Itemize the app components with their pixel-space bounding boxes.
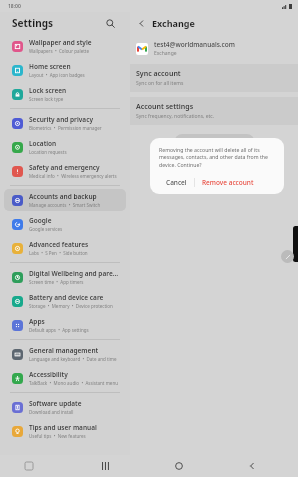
staticText: Sync account <box>136 69 181 79</box>
staticText: Digital Wellbeing and parental controls <box>29 269 120 278</box>
staticText: Advanced features <box>29 240 89 249</box>
staticText: Security and privacy <box>29 115 93 124</box>
staticText: test4@worldmanuals.com <box>154 40 235 49</box>
button[interactable]: Recents <box>97 457 115 475</box>
staticText: Accessibility <box>29 370 68 379</box>
staticText: Medical info • Wireless emergency alerts <box>29 173 117 179</box>
staticText: Remove account <box>202 178 254 187</box>
button[interactable]: Home <box>170 457 188 475</box>
staticText: Sync on for all items <box>136 80 184 87</box>
button[interactable]: Accounts and backup <box>4 189 126 211</box>
button[interactable]: General management <box>4 343 126 365</box>
button[interactable]: Apps <box>4 314 126 336</box>
staticText: Default apps • App settings <box>29 327 89 333</box>
button[interactable]: Location <box>4 136 126 158</box>
staticText: Location requests <box>29 149 67 155</box>
button[interactable]: Lock screen <box>4 83 126 105</box>
button[interactable]: Advanced features <box>4 237 126 259</box>
button[interactable]: Sync account <box>130 64 298 92</box>
staticText: Google services <box>29 226 63 232</box>
staticText: Wallpapers • Colour palette <box>29 48 89 54</box>
staticText: Storage • Memory • Device protection <box>29 303 113 309</box>
button[interactable]: Edge panel <box>293 226 298 262</box>
staticText: Useful tips • New features <box>29 433 86 439</box>
staticText: Language and keyboard • Date and time <box>29 356 117 362</box>
staticText: Cancel <box>166 178 187 187</box>
staticText: Exchange <box>152 17 195 29</box>
staticText: Sync frequency, notifications, etc. <box>136 113 215 120</box>
button[interactable]: Remove account <box>174 134 255 151</box>
staticText: Exchange <box>154 50 177 57</box>
staticText: Screen lock type <box>29 96 64 102</box>
button[interactable]: Battery and device care <box>4 290 126 312</box>
staticText: Biometrics • Permission manager <box>29 125 102 131</box>
button[interactable]: Accessibility <box>4 367 126 389</box>
button[interactable]: Remove account <box>195 175 261 190</box>
staticText: Google <box>29 216 52 225</box>
button[interactable]: Tips and user manual <box>4 420 126 442</box>
staticText: Download and install <box>29 409 74 415</box>
button[interactable]: Security and privacy <box>4 112 126 134</box>
button[interactable]: Resize window <box>281 250 294 263</box>
button[interactable]: Back <box>133 15 149 31</box>
staticText: Battery and device care <box>29 293 104 302</box>
button[interactable]: Search <box>102 15 118 31</box>
button[interactable]: Back <box>243 457 261 475</box>
button[interactable]: Safety and emergency <box>4 160 126 182</box>
staticText: Lock screen <box>29 86 67 95</box>
staticText: Apps <box>29 317 45 326</box>
staticText: Wallpaper and style <box>29 38 92 47</box>
staticText: Layout • App icon badges <box>29 72 85 78</box>
staticText: Home screen <box>29 62 71 71</box>
staticText: Safety and emergency <box>29 163 100 172</box>
button[interactable]: Digital Wellbeing and parental controls <box>4 266 126 288</box>
button[interactable]: Software update <box>4 396 126 418</box>
staticText: 18:00 <box>8 3 21 10</box>
staticText: Software update <box>29 399 82 408</box>
button[interactable]: Home screen <box>4 59 126 81</box>
button[interactable]: Cancel <box>159 175 194 190</box>
staticText: Location <box>29 139 57 148</box>
staticText: Settings <box>12 16 53 30</box>
button[interactable]: Wallpaper and style <box>4 35 126 57</box>
button[interactable]: Google <box>4 213 126 235</box>
button[interactable]: Keyboard <box>22 459 36 473</box>
button[interactable]: test4@worldmanuals.com <box>130 34 298 64</box>
staticText: Tips and user manual <box>29 423 97 432</box>
staticText: TalkBack • Mono audio • Assistant menu <box>29 380 118 386</box>
staticText: Screen time • App timers <box>29 279 84 285</box>
staticText: Removing the account will delete all of … <box>159 146 277 169</box>
staticText: Labs • S Pen • Side button <box>29 250 88 256</box>
button[interactable]: Account settings <box>130 97 298 125</box>
staticText: Accounts and backup <box>29 192 97 201</box>
staticText: Account settings <box>136 102 194 112</box>
staticText: General management <box>29 346 99 355</box>
staticText: Manage accounts • Smart Switch <box>29 202 101 208</box>
